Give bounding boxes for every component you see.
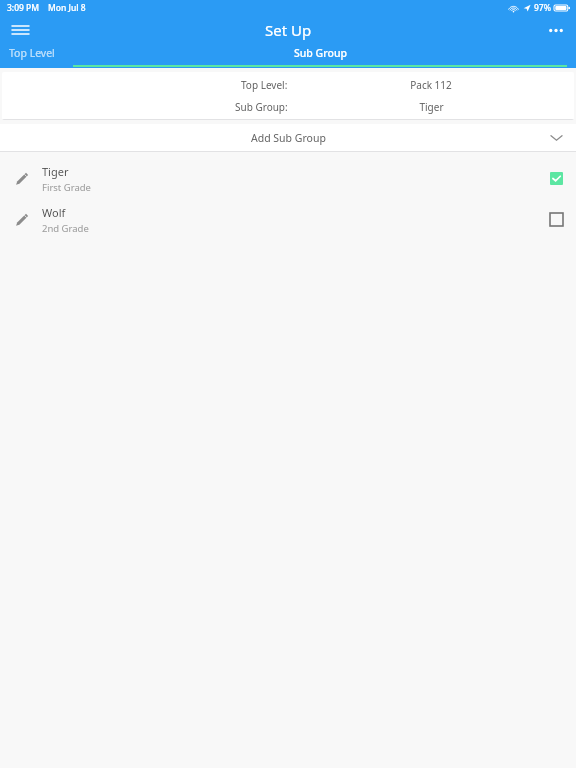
staticText: 2nd Grade — [42, 222, 89, 235]
staticText: Mon Jul 8 — [48, 2, 86, 14]
staticText: Wolf — [42, 205, 66, 220]
staticText: Pack 112 — [410, 78, 452, 92]
staticText: Top Level: — [241, 78, 288, 92]
button[interactable]: Selected Tiger — [536, 158, 576, 199]
button[interactable]: Add Sub Group — [0, 124, 576, 152]
staticText: 97% — [534, 2, 551, 14]
button[interactable]: Menu — [0, 16, 40, 44]
button[interactable]: Edit Wolf — [0, 199, 42, 240]
button[interactable]: More options — [536, 16, 576, 44]
button[interactable]: Edit Tiger — [0, 158, 42, 199]
staticText: 3:09 PM — [7, 2, 40, 14]
staticText: Set Up — [265, 20, 312, 40]
staticText: Tiger — [42, 164, 69, 179]
staticText: Add Sub Group — [251, 131, 326, 145]
staticText: Top Level — [9, 46, 55, 60]
button[interactable]: Select Wolf — [536, 199, 576, 240]
staticText: Sub Group — [294, 46, 347, 60]
staticText: First Grade — [42, 181, 91, 194]
button[interactable]: Sub Group — [64, 44, 576, 68]
button[interactable]: Edit Tiger — [0, 158, 576, 199]
staticText: Tiger — [419, 100, 444, 114]
staticText: Sub Group: — [235, 100, 288, 114]
button[interactable]: Top Level — [0, 44, 64, 68]
button[interactable]: Edit Wolf — [0, 199, 576, 240]
